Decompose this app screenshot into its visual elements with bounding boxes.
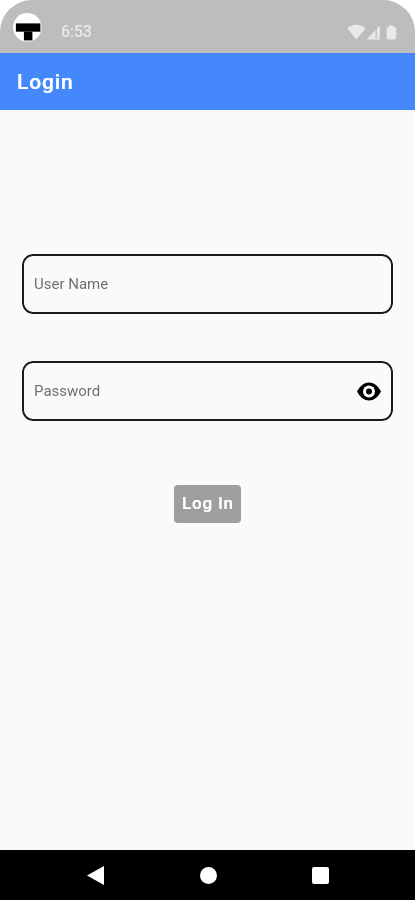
button[interactable]: Password <box>22 361 393 421</box>
staticText: Password <box>34 382 101 400</box>
staticText: Login <box>17 70 74 95</box>
staticText: Log In <box>182 493 234 513</box>
button[interactable]: Back <box>67 855 123 895</box>
button[interactable]: Recents <box>292 855 348 895</box>
button[interactable]: User Name <box>22 254 393 314</box>
other: Status icons <box>0 0 415 53</box>
button[interactable]: Log In <box>174 485 241 523</box>
button[interactable]: Home <box>180 855 236 895</box>
button[interactable]: Show password <box>354 376 384 406</box>
staticText: 6:53 <box>61 22 92 41</box>
staticText: User Name <box>34 275 109 293</box>
